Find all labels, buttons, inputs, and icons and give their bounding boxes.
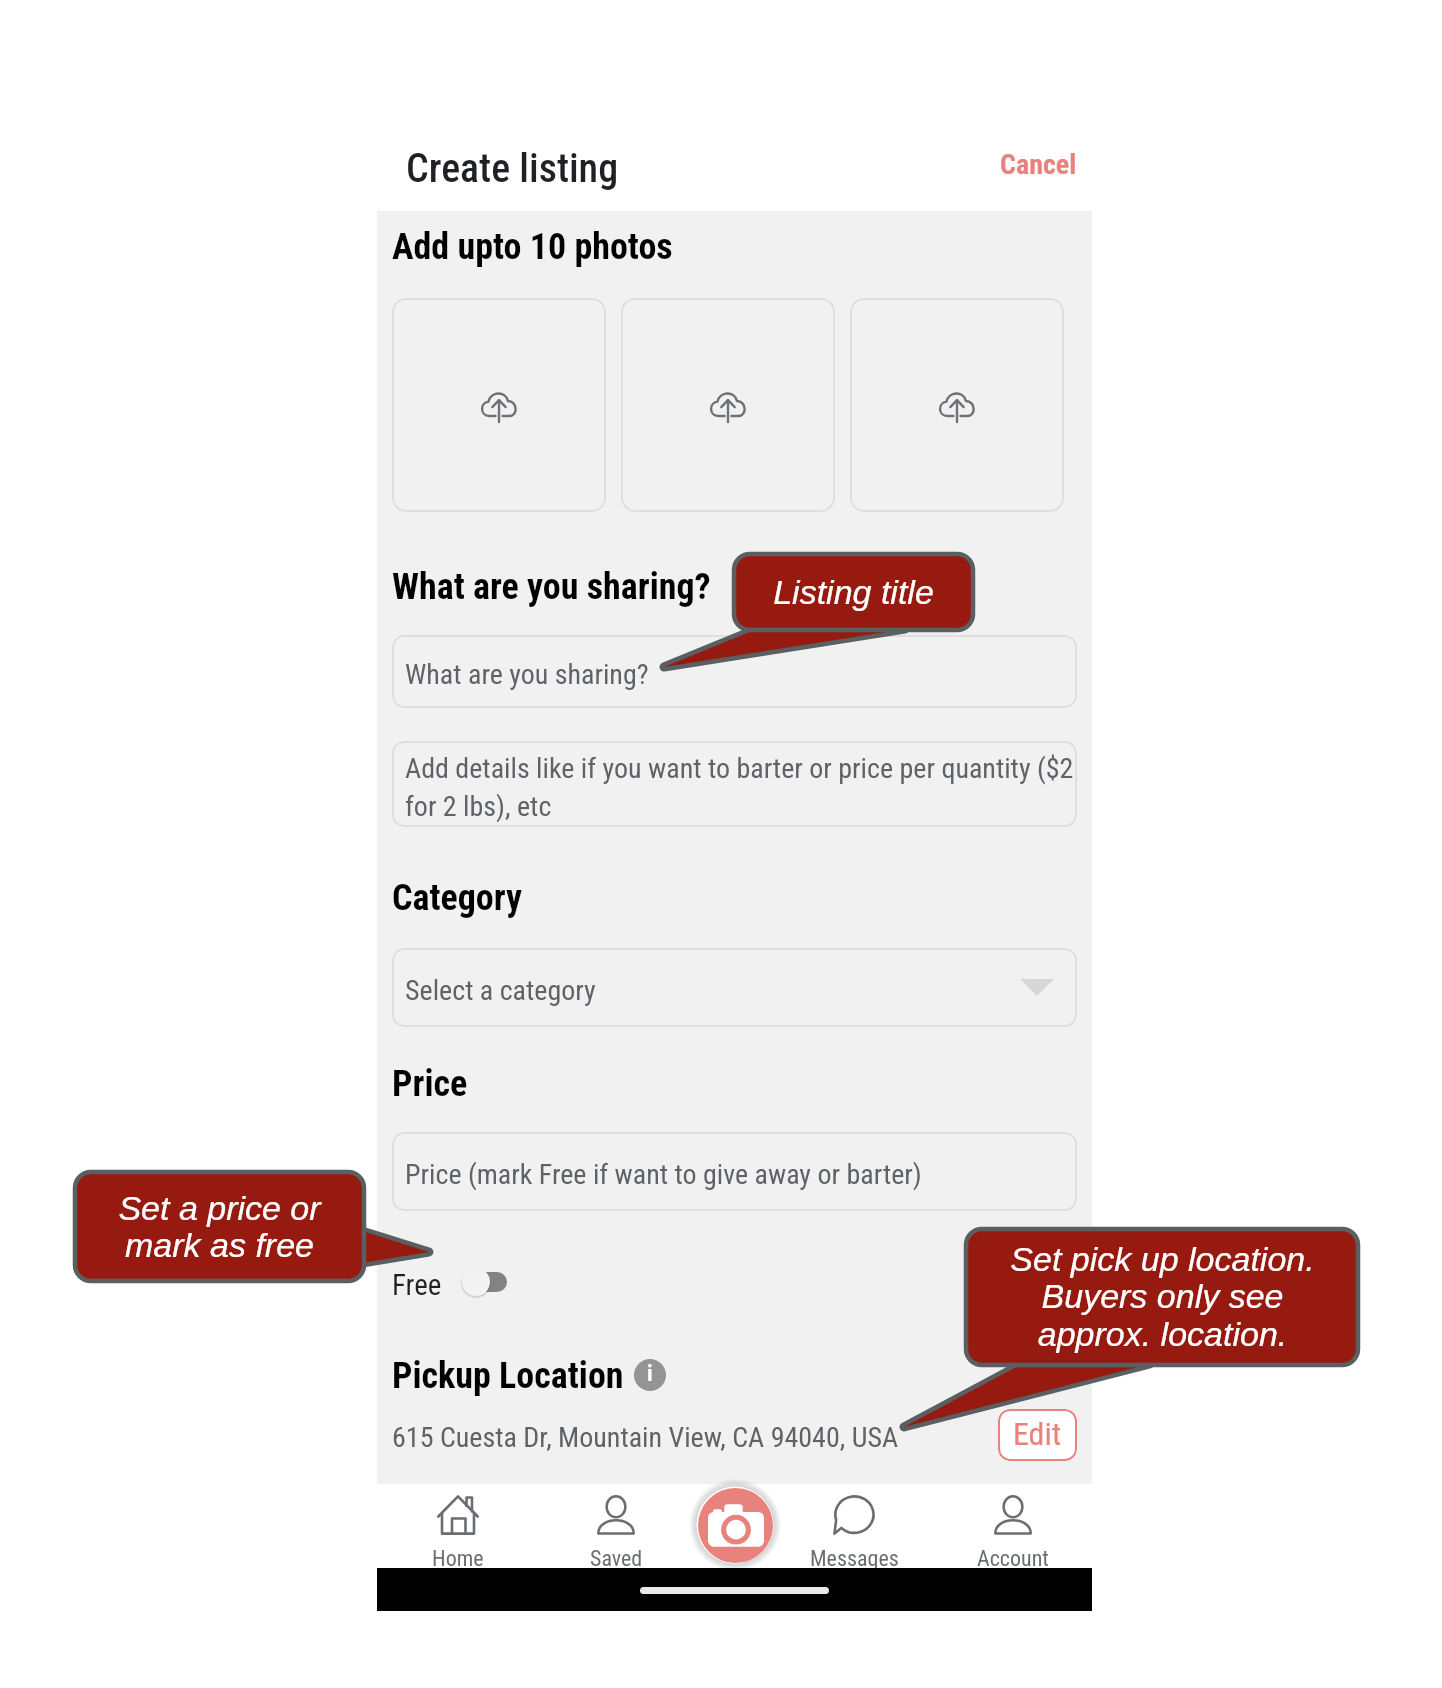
button[interactable]: Add photo — [621, 298, 835, 512]
button[interactable]: What are you sharing? — [392, 635, 1077, 708]
staticText: Set a price or mark as free — [118, 1189, 321, 1265]
staticText: Cancel — [1000, 148, 1077, 181]
staticText: Listing title — [773, 573, 934, 611]
staticText: Edit — [1013, 1415, 1062, 1453]
staticText: Category — [392, 877, 523, 919]
button[interactable]: Add details like if you want to barter o… — [392, 741, 1077, 827]
staticText: Price — [392, 1063, 468, 1105]
staticText: Set pick up location. Buyers only see ap… — [1010, 1240, 1315, 1354]
staticText: Select a category — [405, 974, 596, 1007]
button[interactable]: Saved — [556, 1484, 676, 1568]
button[interactable]: Messages — [794, 1484, 914, 1568]
button[interactable]: Add photo — [850, 298, 1064, 512]
staticText: Home — [432, 1546, 484, 1572]
staticText: Saved — [590, 1546, 643, 1572]
staticText: What are you sharing? — [392, 566, 711, 608]
staticText: Create listing — [406, 145, 619, 192]
button[interactable]: Home — [398, 1484, 518, 1568]
button[interactable]: Edit — [998, 1409, 1077, 1461]
staticText: What are you sharing? — [405, 658, 649, 691]
staticText: i — [647, 1361, 653, 1387]
button[interactable]: Account — [953, 1484, 1073, 1568]
staticText: 615 Cuesta Dr, Mountain View, CA 94040, … — [392, 1421, 899, 1454]
staticText: Free — [392, 1268, 442, 1302]
button[interactable]: Price (mark Free if want to give away or… — [392, 1132, 1077, 1211]
staticText: Pickup Location — [392, 1355, 624, 1397]
staticText: Price (mark Free if want to give away or… — [405, 1158, 922, 1191]
button[interactable]: Mark as free toggle — [455, 1257, 513, 1305]
button[interactable]: Cancel — [990, 138, 1087, 191]
button[interactable]: Information — [634, 1359, 666, 1391]
staticText: Add details like if you want to barter o… — [405, 752, 1077, 823]
button[interactable]: Select a category — [392, 948, 1077, 1027]
staticText: Messages — [810, 1546, 899, 1572]
button[interactable]: New listing camera — [698, 1488, 773, 1563]
staticText: Account — [977, 1546, 1049, 1572]
button[interactable]: Add photo — [392, 298, 606, 512]
staticText: Add upto 10 photos — [392, 226, 673, 268]
